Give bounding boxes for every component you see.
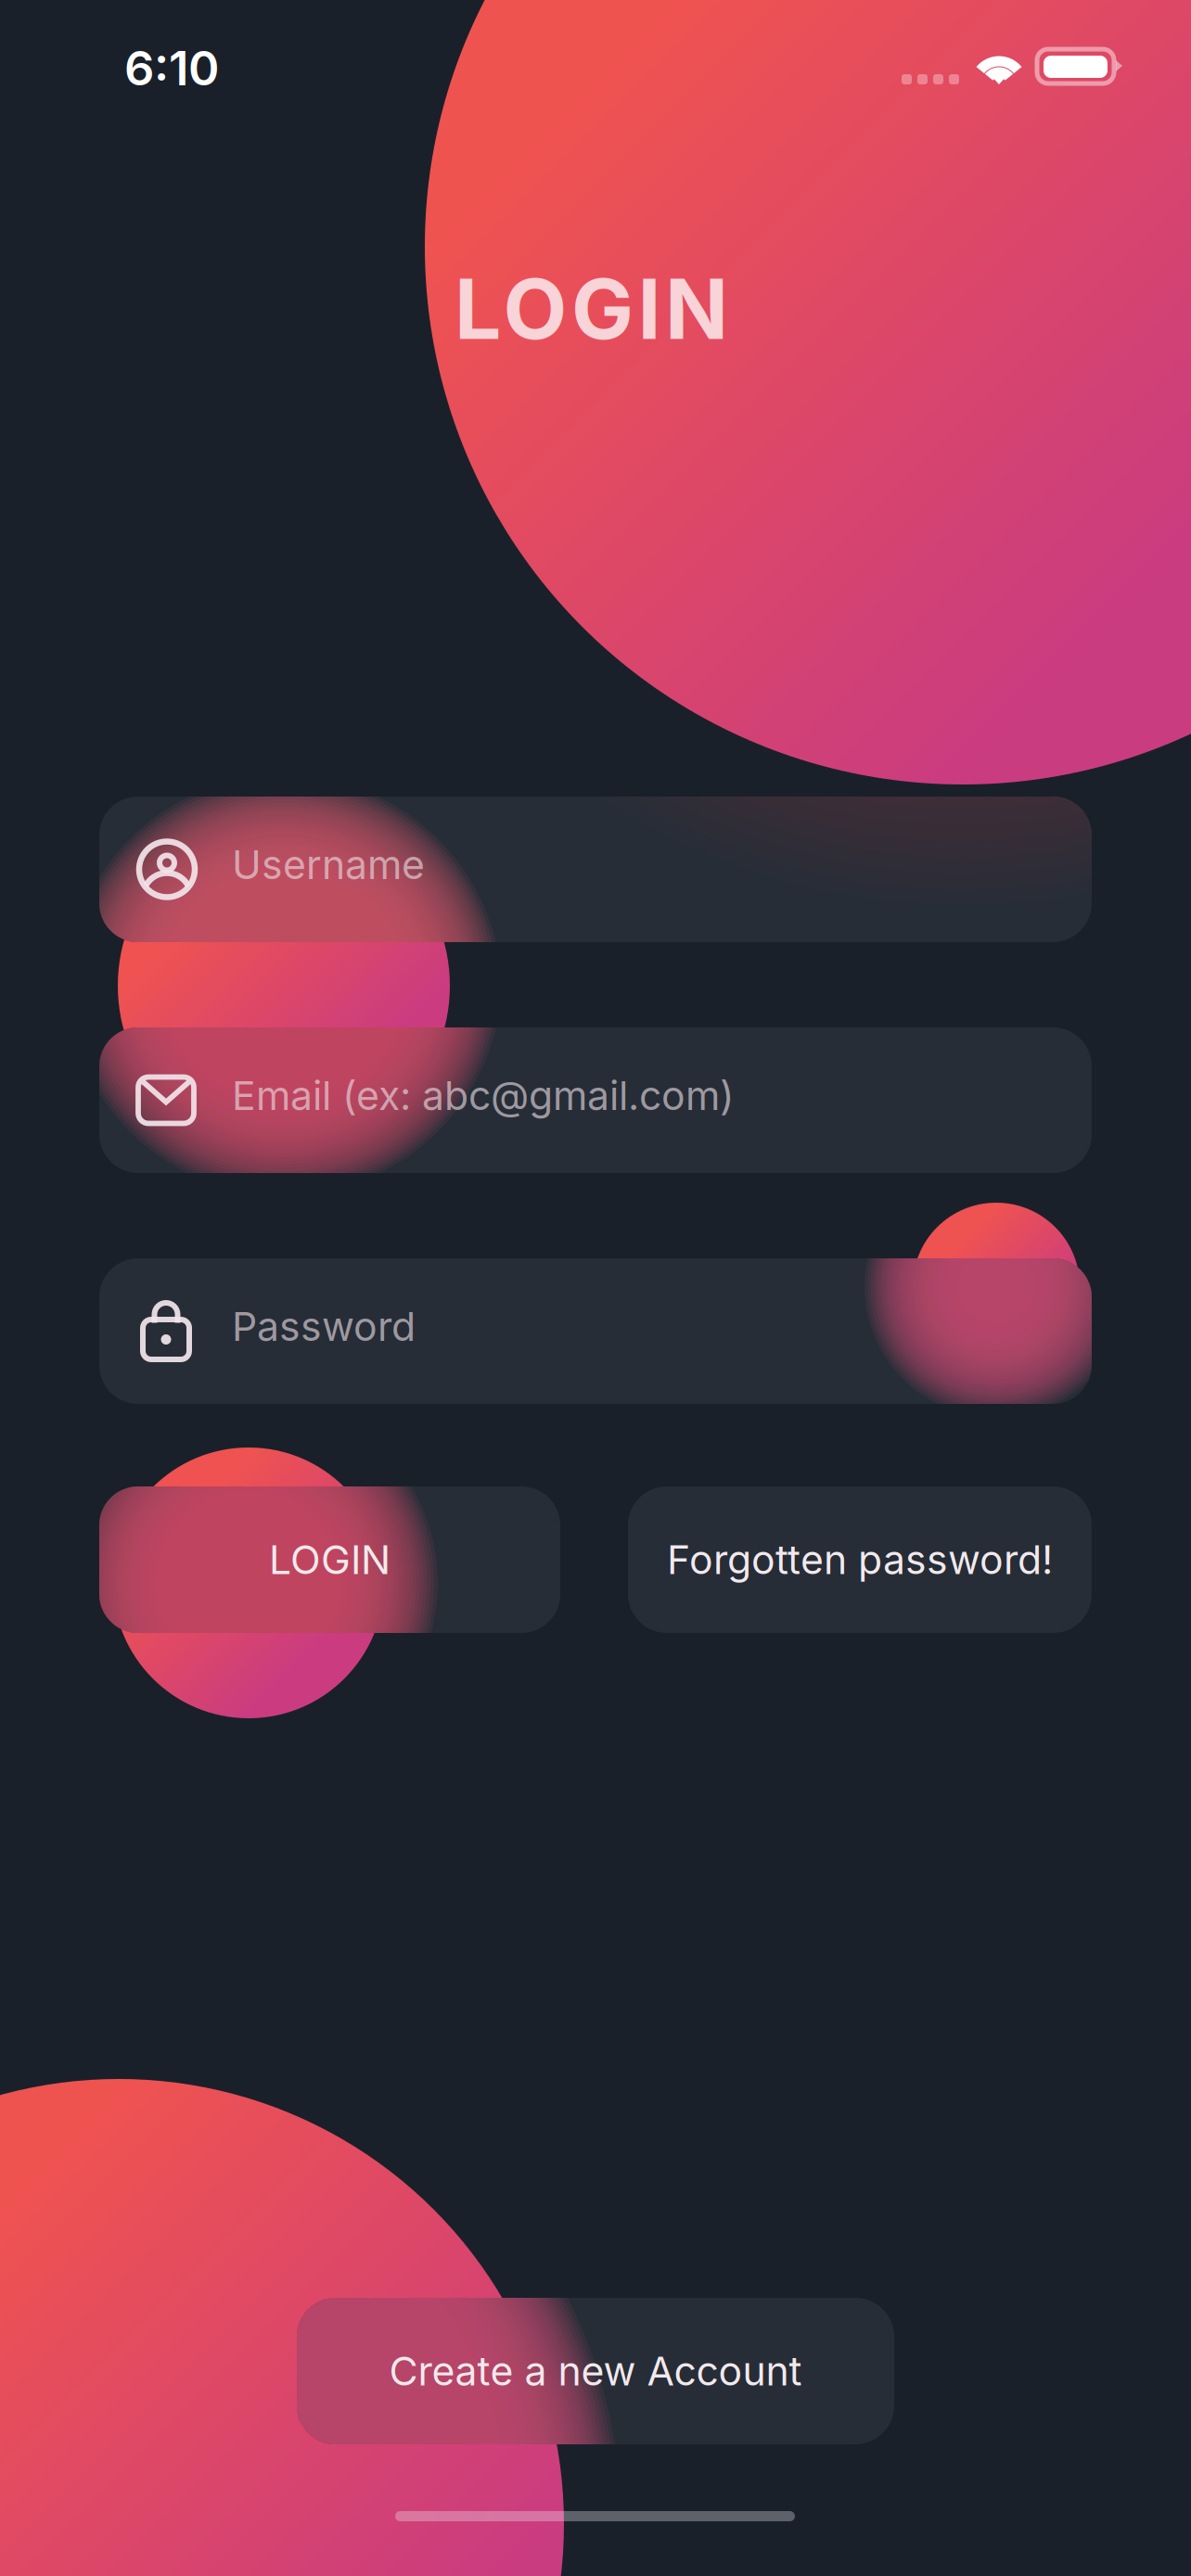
staticText: Email (ex: abc@gmail.com)	[232, 1072, 735, 1120]
button[interactable]: Username	[99, 797, 1092, 942]
button[interactable]: Create a new Account	[297, 2298, 894, 2444]
button[interactable]: LOGIN	[99, 1486, 560, 1633]
staticText: 6:10	[124, 40, 219, 97]
staticText: Forgotten password!	[667, 1536, 1053, 1584]
staticText: LOGIN	[455, 259, 728, 359]
staticText: Create a new Account	[389, 2347, 802, 2395]
button[interactable]: Password	[99, 1258, 1092, 1404]
staticText: LOGIN	[269, 1536, 391, 1584]
staticText: Password	[232, 1303, 416, 1350]
button[interactable]: Email (ex: abc@gmail.com)	[99, 1027, 1092, 1173]
button[interactable]: Forgotten password!	[628, 1486, 1092, 1633]
staticText: Username	[232, 841, 425, 889]
